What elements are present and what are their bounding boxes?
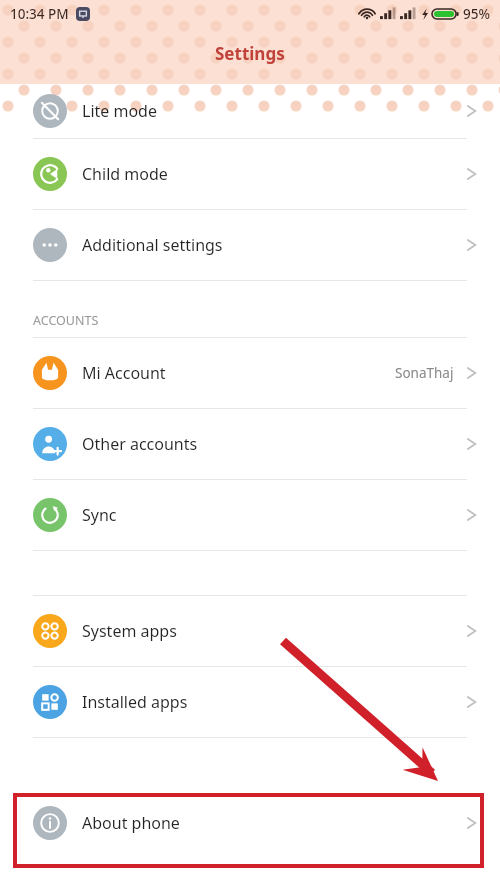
button[interactable]: Other accounts xyxy=(0,409,500,479)
staticText: Mi Account xyxy=(82,362,166,384)
staticText: 95% xyxy=(463,5,490,23)
staticText: Installed apps xyxy=(82,691,188,713)
button[interactable]: Child mode xyxy=(0,139,500,209)
button[interactable]: System apps xyxy=(0,596,500,666)
staticText: ACCOUNTS xyxy=(33,312,99,329)
staticText: Child mode xyxy=(82,163,168,185)
staticText: Additional settings xyxy=(82,234,223,256)
staticText: SonaThaj xyxy=(395,364,454,382)
staticText: Sync xyxy=(82,504,117,526)
button[interactable]: Mi Account xyxy=(0,338,500,408)
staticText: Lite mode xyxy=(82,100,157,122)
staticText: 10:34 PM xyxy=(10,5,69,23)
staticText: System apps xyxy=(82,620,177,642)
button[interactable]: Sync xyxy=(0,480,500,550)
staticText: Settings xyxy=(215,42,285,65)
button[interactable]: Lite mode xyxy=(0,84,500,138)
staticText: About phone xyxy=(82,812,180,834)
button[interactable]: Installed apps xyxy=(0,667,500,737)
button[interactable]: Additional settings xyxy=(0,210,500,280)
staticText: Other accounts xyxy=(82,433,198,455)
button[interactable]: About phone xyxy=(0,788,500,858)
